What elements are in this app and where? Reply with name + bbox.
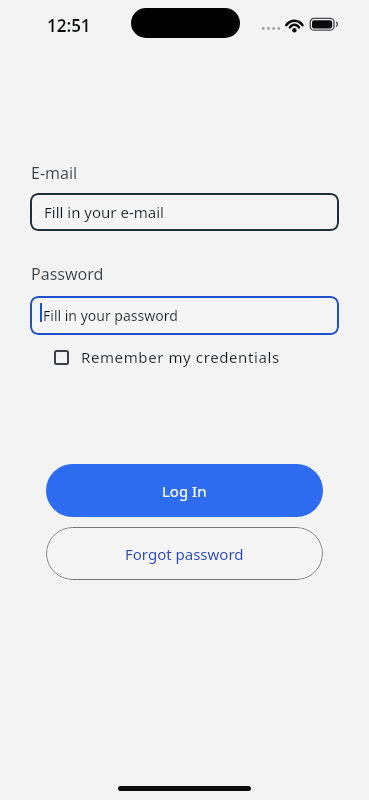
staticText: Fill in your e-mail (44, 202, 164, 222)
button[interactable]: Log In (46, 464, 323, 517)
staticText: 12:51 (47, 14, 91, 37)
button[interactable]: Fill in your e-mail (30, 193, 339, 231)
button[interactable]: Forgot password (46, 527, 323, 580)
staticText: Fill in your password (43, 306, 178, 325)
staticText: Remember my credentials (81, 347, 280, 367)
button[interactable]: Remember my credentials (46, 343, 286, 371)
staticText: E-mail (31, 162, 78, 184)
staticText: Log In (162, 481, 207, 501)
staticText: Password (31, 263, 104, 285)
button[interactable]: Fill in your password (30, 296, 339, 335)
staticText: Forgot password (125, 544, 244, 564)
